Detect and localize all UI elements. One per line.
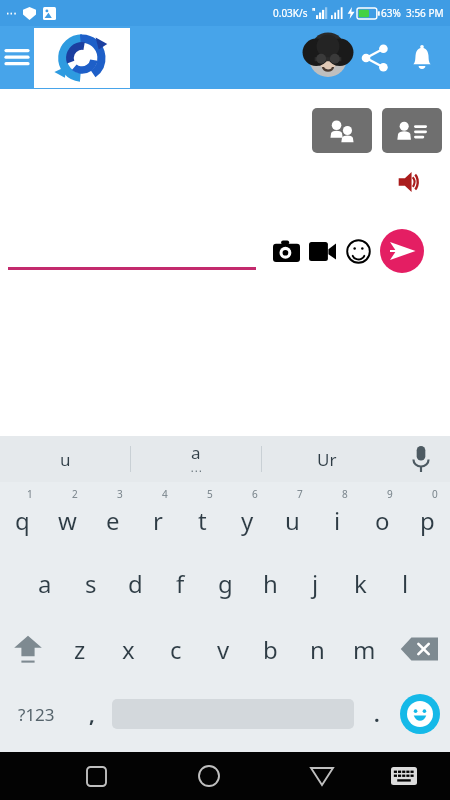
button[interactable]: s — [68, 550, 113, 616]
staticText: 8 — [342, 487, 348, 501]
staticText: m — [353, 633, 376, 666]
staticText: Ur — [317, 448, 337, 471]
staticText: c — [170, 633, 182, 666]
staticText: j — [312, 567, 319, 600]
staticText: 2 — [72, 487, 78, 501]
staticText: a — [38, 567, 52, 600]
staticText: 63% — [381, 6, 401, 20]
staticText: b — [263, 633, 278, 666]
staticText: 0.03K/s — [273, 6, 308, 20]
button[interactable]: Share — [352, 35, 398, 81]
button[interactable]: a — [22, 550, 68, 616]
button[interactable]: Groups — [312, 108, 372, 153]
button[interactable]: f — [158, 550, 203, 616]
staticText: 3 — [117, 487, 123, 501]
button[interactable]: Backspace — [388, 616, 450, 682]
button[interactable]: Video — [306, 235, 338, 267]
button[interactable]: Menu — [0, 26, 34, 89]
staticText: e — [106, 504, 120, 537]
button[interactable]: , — [72, 682, 112, 746]
staticText: k — [354, 567, 367, 600]
staticText: y — [241, 504, 254, 537]
button[interactable] — [34, 28, 130, 88]
staticText: p — [420, 504, 435, 537]
button[interactable]: Recents — [74, 754, 118, 798]
button[interactable]: Voice input — [392, 436, 450, 482]
button[interactable]: k — [338, 550, 383, 616]
button[interactable]: Camera — [270, 235, 302, 267]
button[interactable]: Sound — [394, 167, 428, 197]
button[interactable]: . — [354, 682, 400, 746]
staticText: v — [217, 633, 230, 666]
staticText: 5 — [207, 487, 213, 501]
staticText: l — [402, 567, 409, 600]
button[interactable]: Shift — [0, 616, 56, 682]
button[interactable]: v — [200, 616, 247, 682]
button[interactable]: 7 — [270, 482, 315, 550]
staticText: f — [176, 567, 185, 600]
staticText: d — [128, 567, 143, 600]
button[interactable]: 1 — [0, 482, 45, 550]
button[interactable]: 3 — [90, 482, 135, 550]
button[interactable]: 9 — [360, 482, 405, 550]
staticText: 6 — [252, 487, 258, 501]
staticText: a — [191, 441, 201, 464]
button[interactable]: b — [247, 616, 294, 682]
staticText: x — [122, 633, 135, 666]
staticText: i — [334, 504, 341, 537]
button[interactable]: u — [0, 436, 130, 482]
button[interactable]: Ur — [262, 436, 392, 482]
staticText: 3:56 PM — [406, 6, 444, 20]
staticText: s — [85, 567, 97, 600]
button[interactable]: ?123 — [0, 682, 72, 746]
button[interactable]: Emoji — [342, 235, 374, 267]
staticText: h — [263, 567, 278, 600]
staticText: o — [375, 504, 390, 537]
button[interactable]: 6 — [225, 482, 270, 550]
button[interactable]: 8 — [315, 482, 360, 550]
staticText: 4 — [162, 487, 168, 501]
staticText: , — [89, 701, 95, 728]
staticText: q — [15, 504, 30, 537]
staticText: u — [60, 448, 71, 471]
staticText: 0 — [432, 487, 438, 501]
staticText: ⋯ — [190, 464, 202, 478]
staticText: t — [198, 504, 207, 537]
button[interactable]: Notifications — [398, 34, 446, 82]
staticText: ?123 — [18, 703, 55, 726]
button[interactable]: Profile — [304, 34, 352, 82]
button[interactable]: m — [341, 616, 388, 682]
staticText: w — [58, 504, 77, 537]
staticText: ⋯ — [6, 7, 17, 20]
staticText: 1 — [27, 487, 33, 501]
button[interactable]: h — [248, 550, 293, 616]
button[interactable]: j — [293, 550, 338, 616]
button[interactable]: 5 — [180, 482, 225, 550]
staticText: g — [218, 567, 233, 600]
staticText: z — [74, 633, 86, 666]
button[interactable]: a — [131, 436, 261, 482]
staticText: n — [310, 633, 325, 666]
button[interactable]: Emoji keyboard — [400, 694, 440, 734]
button[interactable]: 0 — [405, 482, 450, 550]
button[interactable]: 2 — [45, 482, 90, 550]
button[interactable]: 4 — [135, 482, 180, 550]
button[interactable]: n — [294, 616, 341, 682]
staticText: 9 — [387, 487, 393, 501]
button[interactable]: l — [383, 550, 428, 616]
staticText: 7 — [297, 487, 303, 501]
staticText: . — [374, 701, 380, 728]
button[interactable]: Home — [187, 754, 231, 798]
button[interactable]: z — [56, 616, 104, 682]
button[interactable]: g — [203, 550, 248, 616]
button[interactable]: Send — [380, 229, 424, 273]
staticText: r — [153, 504, 163, 537]
button[interactable]: d — [113, 550, 158, 616]
button[interactable]: c — [152, 616, 200, 682]
button[interactable]: Contacts — [382, 108, 442, 153]
staticText: u — [285, 504, 300, 537]
button[interactable]: Switch keyboard — [382, 754, 426, 798]
button[interactable]: Back — [300, 754, 344, 798]
button[interactable]: x — [104, 616, 152, 682]
